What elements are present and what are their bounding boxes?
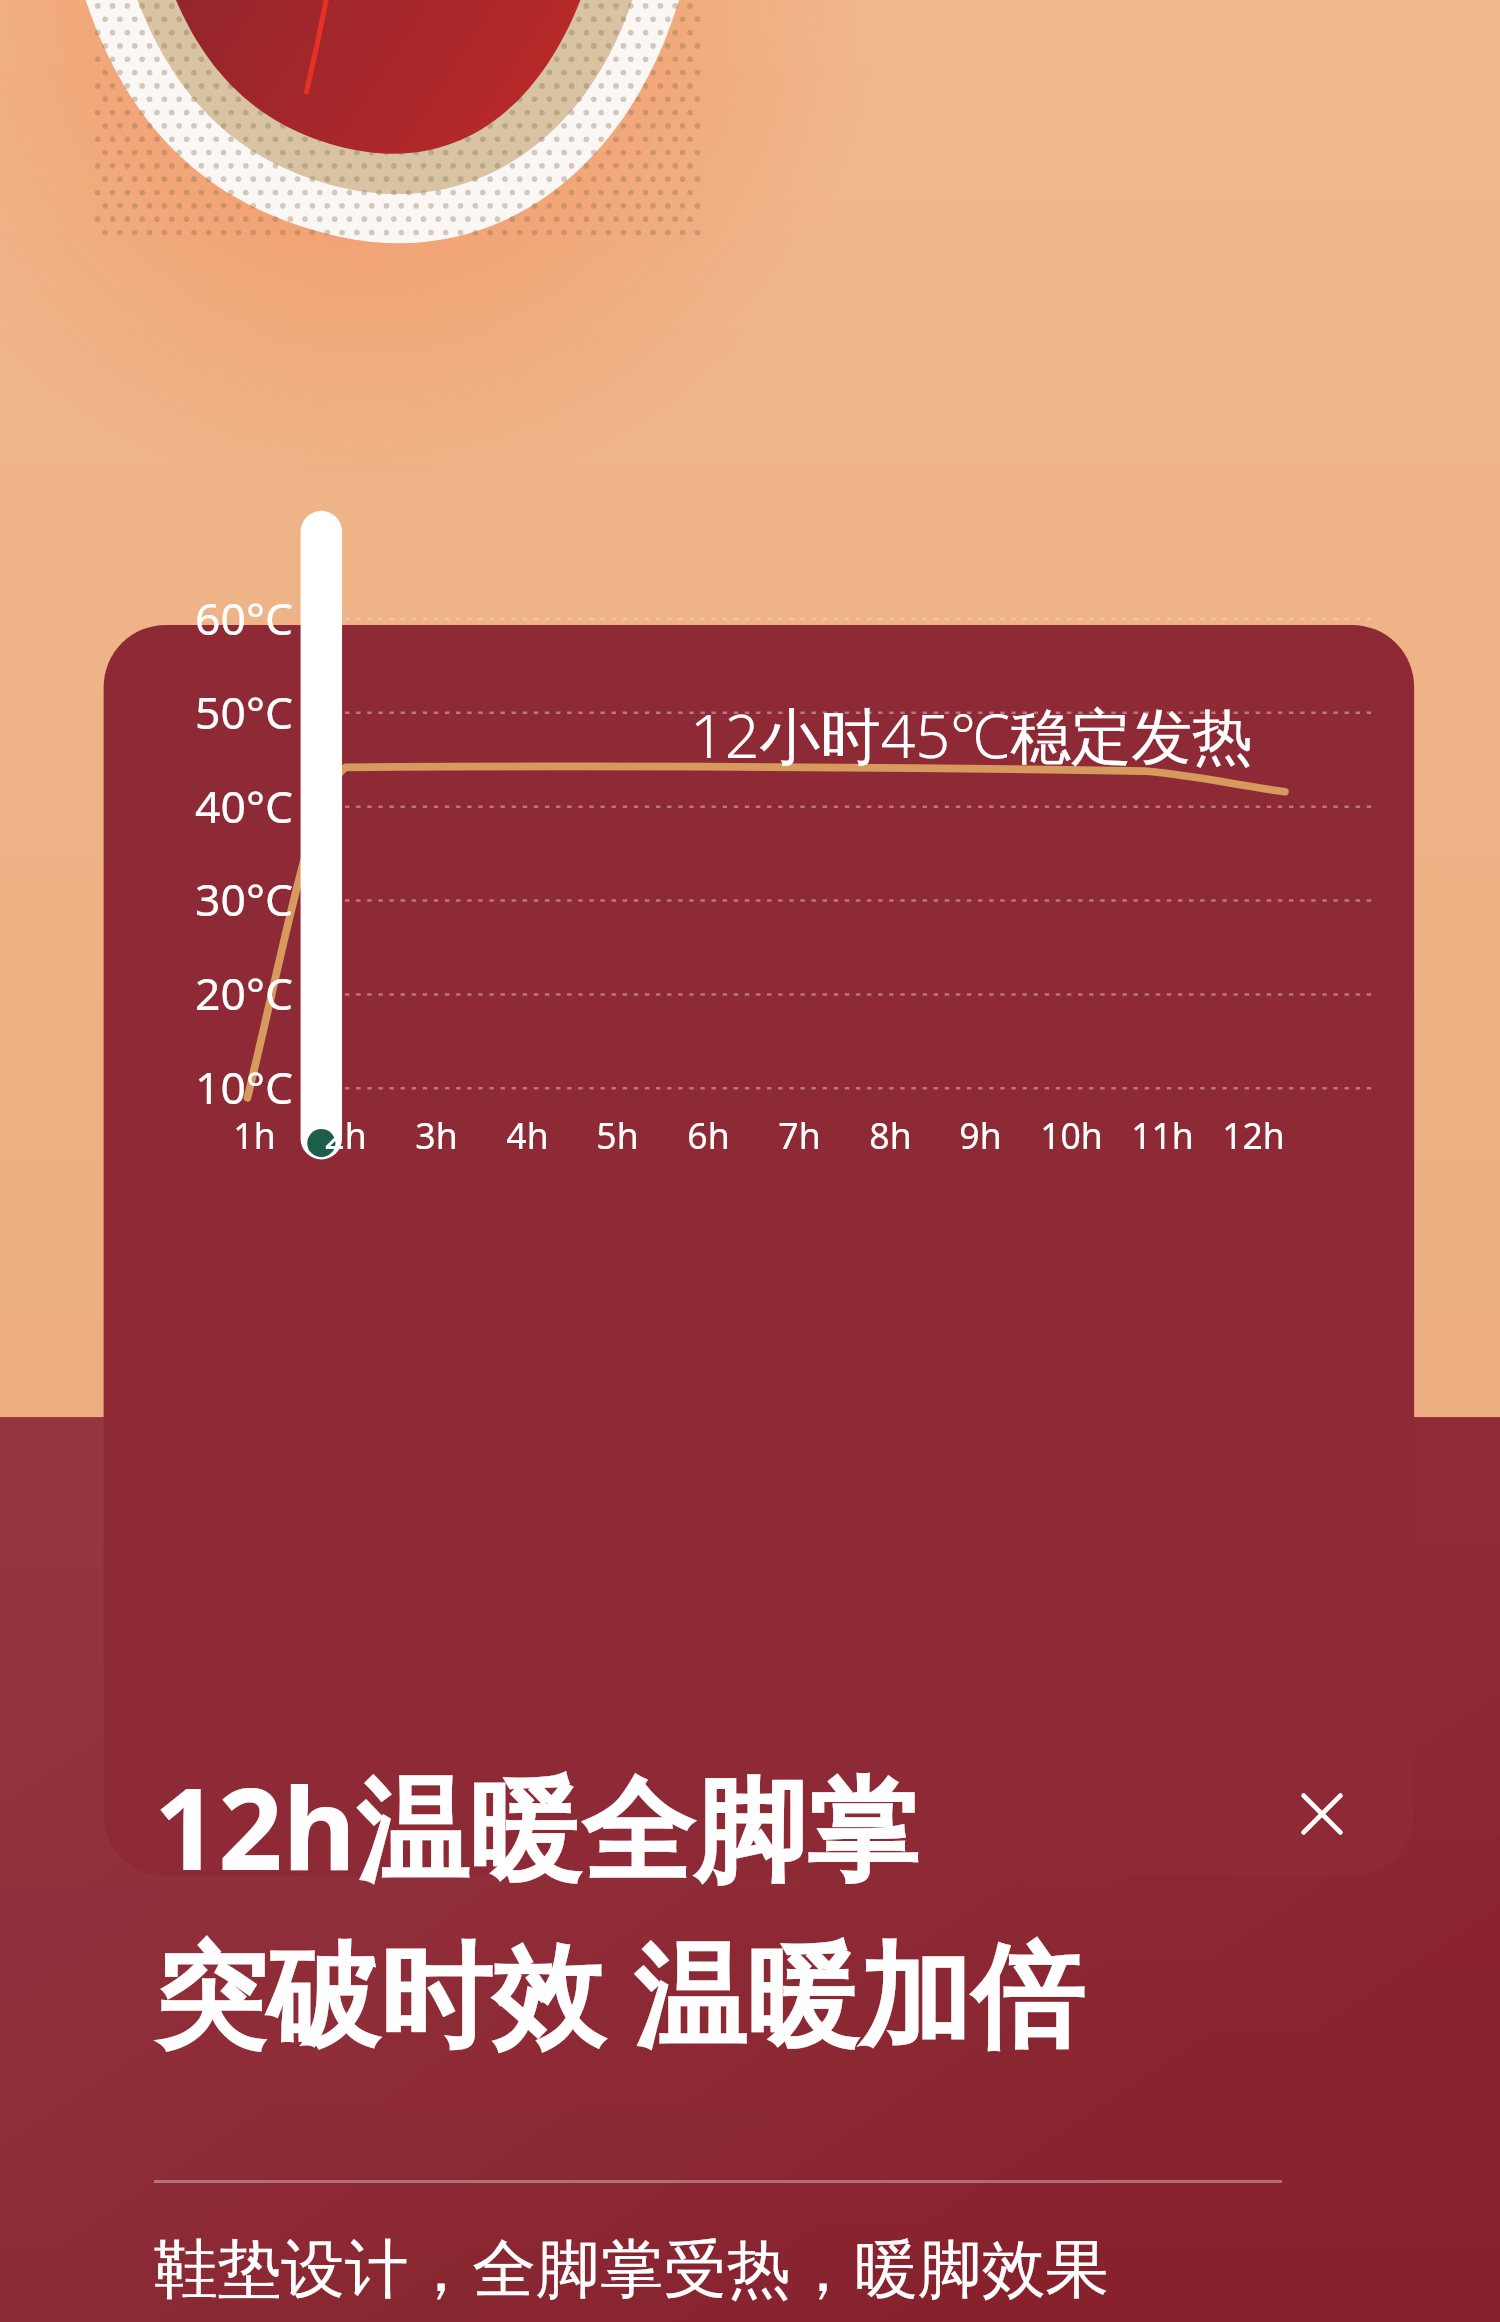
staticText: 40°C: [86, 776, 293, 837]
staticText: 7h: [755, 1111, 844, 1159]
staticText: 1h: [210, 1111, 299, 1159]
staticText: 8h: [846, 1111, 935, 1159]
staticText: 11h: [1118, 1111, 1207, 1159]
staticText: 3h: [392, 1111, 481, 1159]
staticText: 5h: [573, 1111, 662, 1159]
staticText: 60°C: [86, 588, 293, 649]
staticText: 4h: [483, 1111, 572, 1159]
staticText: 30°C: [86, 869, 293, 930]
staticText: 12小时45℃稳定发热: [690, 693, 1253, 776]
staticText: 10h: [1027, 1111, 1116, 1159]
staticText: 突破时效 温暖加倍: [154, 1916, 1084, 2070]
staticText: 9h: [936, 1111, 1025, 1159]
staticText: 12h: [1209, 1111, 1298, 1159]
staticText: 12h温暖全脚掌: [154, 1750, 919, 1904]
staticText: 50°C: [86, 682, 293, 743]
staticText: 10°C: [86, 1057, 293, 1118]
staticText: 鞋垫设计，全脚掌受热，暖脚效果: [154, 2230, 1110, 2310]
button[interactable]: Close: [1276, 1768, 1368, 1860]
staticText: 2h: [301, 1111, 390, 1159]
staticText: 20°C: [86, 963, 293, 1024]
staticText: 6h: [664, 1111, 753, 1159]
